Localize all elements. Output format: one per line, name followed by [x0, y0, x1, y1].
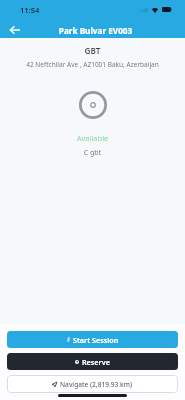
button[interactable]: Navigate (2,819.93 km): [7, 375, 178, 393]
staticText: Park Bulvar EV003: [3, 25, 185, 36]
staticText: 11:54: [20, 5, 40, 15]
staticText: Reserve: [82, 357, 110, 367]
button[interactable]: Start Session: [7, 331, 178, 348]
button[interactable]: Reserve: [7, 353, 178, 370]
staticText: 42 Neftchilar Ave , AZ1001 Baku, Azerbai…: [0, 60, 185, 69]
staticText: Start Session: [73, 335, 119, 345]
staticText: Navigate (2,819.93 km): [60, 380, 133, 389]
staticText: Available: [0, 133, 185, 143]
staticText: GBT: [0, 45, 185, 56]
button[interactable]: Back: [4, 19, 25, 40]
staticText: C gbt: [0, 148, 185, 158]
